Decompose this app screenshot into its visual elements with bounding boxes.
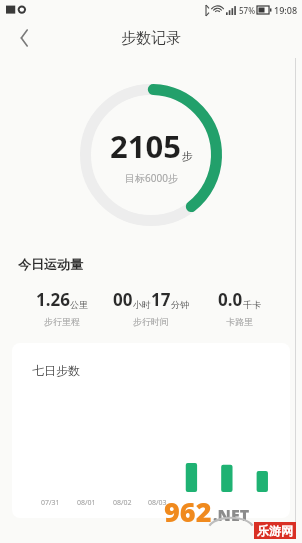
staticText: .NET bbox=[213, 504, 250, 526]
button[interactable]: 0.0 bbox=[195, 288, 284, 327]
staticText: 1.26 bbox=[36, 288, 70, 311]
staticText: 步 bbox=[182, 149, 193, 163]
staticText: 07/31 bbox=[41, 498, 60, 508]
staticText: 乐游网 bbox=[257, 523, 293, 538]
staticText: 分钟 bbox=[171, 299, 189, 310]
staticText: 08/01 bbox=[77, 498, 96, 508]
staticText: 19:08 bbox=[274, 4, 298, 16]
staticText: 目标6000步 bbox=[125, 171, 178, 185]
staticText: 今日运动量 bbox=[18, 256, 83, 272]
staticText: 2105 bbox=[110, 125, 181, 167]
staticText: 962 bbox=[164, 493, 212, 530]
button[interactable]: 七日步数 bbox=[12, 343, 290, 518]
button[interactable]: Back bbox=[8, 22, 40, 54]
staticText: 17 bbox=[151, 288, 171, 311]
button[interactable]: 1.26 bbox=[18, 288, 106, 327]
staticText: 卡路里 bbox=[226, 316, 253, 327]
staticText: 0.0 bbox=[218, 288, 243, 311]
staticText: 08/02 bbox=[113, 498, 132, 508]
staticText: 七日步数 bbox=[32, 363, 80, 378]
staticText: 步行时间 bbox=[133, 316, 169, 327]
staticText: 57% bbox=[239, 5, 255, 16]
staticText: 步行里程 bbox=[44, 316, 80, 327]
staticText: 08/03 bbox=[148, 498, 167, 508]
staticText: 千卡 bbox=[243, 299, 261, 310]
button[interactable]: 00 bbox=[106, 288, 195, 327]
staticText: 00 bbox=[113, 288, 133, 311]
staticText: 公里 bbox=[70, 299, 88, 310]
staticText: 步数记录 bbox=[121, 29, 181, 48]
staticText: 小时 bbox=[133, 299, 151, 310]
